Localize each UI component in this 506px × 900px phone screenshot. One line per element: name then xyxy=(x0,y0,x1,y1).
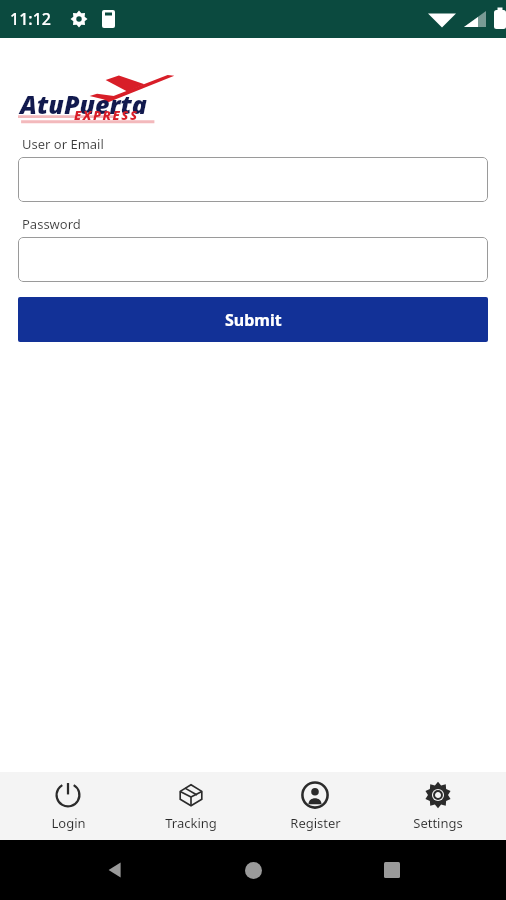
button[interactable]: Recent apps xyxy=(368,846,416,894)
button[interactable]: Tracking xyxy=(136,772,246,840)
staticText: AtuPuerta xyxy=(20,87,148,121)
staticText: 11:12 xyxy=(10,8,51,30)
staticText: User or Email xyxy=(22,135,104,153)
staticText: Settings xyxy=(413,814,463,832)
staticText: Submit xyxy=(225,309,282,331)
button[interactable] xyxy=(18,237,488,282)
staticText: Register xyxy=(290,814,341,832)
button[interactable]: Login xyxy=(13,772,123,840)
staticText: Tracking xyxy=(165,814,217,832)
staticText: Login xyxy=(51,814,86,832)
button[interactable]: Back xyxy=(91,846,139,894)
button[interactable]: Home xyxy=(229,846,277,894)
button[interactable]: Submit xyxy=(18,297,488,342)
button[interactable]: Settings xyxy=(383,772,493,840)
button[interactable]: Register xyxy=(260,772,370,840)
staticText: EXPRESS xyxy=(74,106,139,124)
button[interactable] xyxy=(18,157,488,202)
staticText: Password xyxy=(22,215,81,233)
